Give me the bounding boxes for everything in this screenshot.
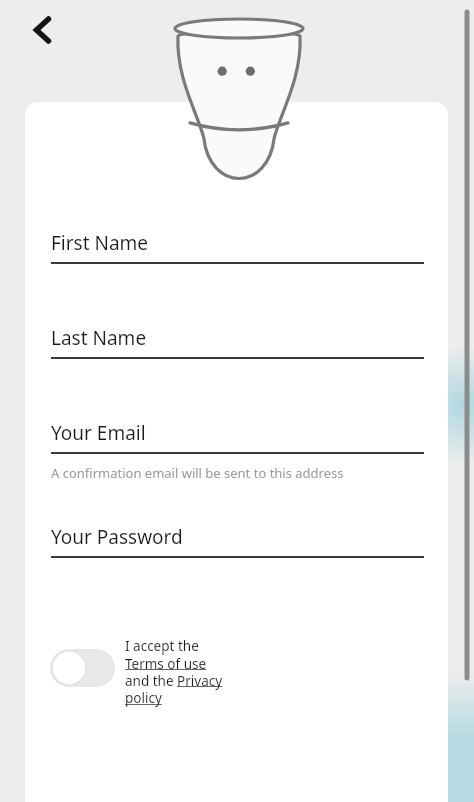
button[interactable]: Last Name [25, 325, 448, 359]
staticText: Your Password [51, 524, 183, 550]
button[interactable]: Accept terms toggle [25, 637, 448, 707]
button[interactable]: First Name [25, 230, 448, 264]
button[interactable]: Back [16, 4, 68, 56]
button[interactable]: Accept terms toggle [50, 649, 115, 687]
button[interactable]: Your Password [25, 524, 448, 558]
staticText: I accept the Terms of use and the Privac… [125, 637, 235, 707]
staticText: Last Name [51, 325, 147, 351]
staticText: Your Email [51, 420, 146, 446]
staticText: A confirmation email will be sent to thi… [51, 464, 344, 482]
button[interactable]: Your Email [25, 420, 448, 454]
staticText: First Name [51, 230, 149, 256]
